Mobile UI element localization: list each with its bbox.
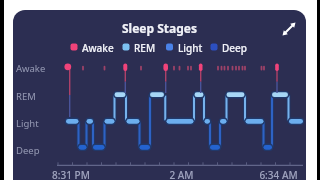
button[interactable] bbox=[13, 10, 306, 180]
staticText: Light bbox=[178, 41, 203, 55]
staticText: Sleep Stages bbox=[122, 20, 198, 36]
staticText: REM bbox=[16, 90, 36, 103]
staticText: REM bbox=[134, 41, 156, 55]
staticText: Awake bbox=[16, 62, 46, 75]
staticText: Deep bbox=[222, 41, 247, 55]
staticText: Deep bbox=[16, 144, 40, 157]
staticText: 2 AM bbox=[169, 168, 194, 180]
staticText: 8:31 PM bbox=[52, 168, 90, 180]
staticText: 6:34 AM bbox=[259, 168, 298, 180]
staticText: Awake bbox=[82, 41, 114, 55]
staticText: Light bbox=[16, 117, 39, 130]
